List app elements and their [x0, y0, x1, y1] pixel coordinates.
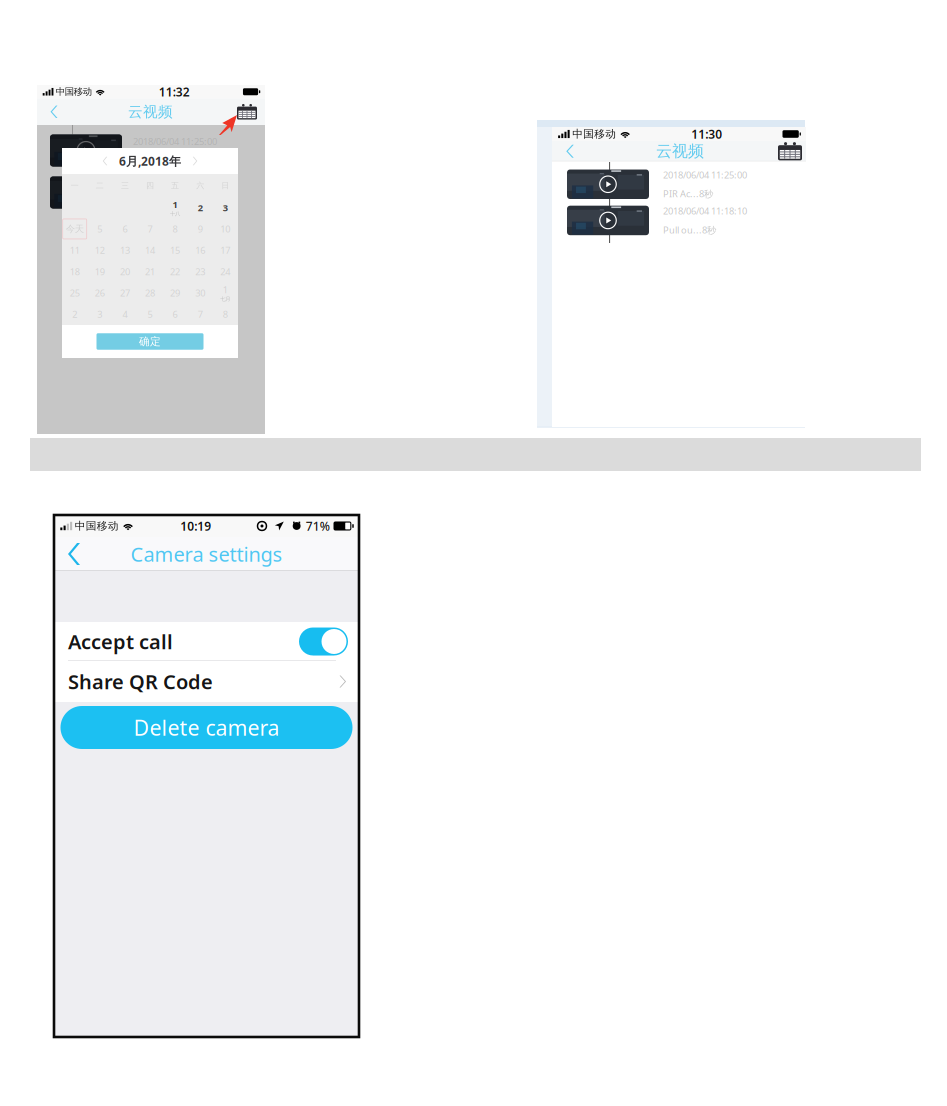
- staticText: 3: [223, 201, 228, 214]
- staticText: Delete camera: [133, 713, 279, 742]
- button[interactable]: 19: [87, 261, 112, 282]
- button[interactable]: Share QR Code: [54, 661, 359, 702]
- staticText: 19: [95, 265, 105, 278]
- staticText: 6月,2018年: [119, 153, 181, 169]
- staticText: 云视频: [128, 103, 173, 121]
- button[interactable]: 确定: [96, 333, 203, 350]
- staticText: 中国移动: [75, 519, 119, 532]
- staticText: Accept call: [68, 628, 173, 655]
- staticText: 6: [173, 308, 178, 320]
- button[interactable]: 13: [112, 240, 137, 261]
- button[interactable]: 16: [188, 240, 213, 261]
- staticText: 18: [70, 265, 80, 278]
- staticText: 2: [198, 201, 203, 214]
- staticText: 20: [120, 265, 130, 278]
- staticText: 21: [145, 265, 155, 278]
- button[interactable]: 22: [163, 261, 188, 282]
- button[interactable]: Pick date: [234, 99, 260, 125]
- staticText: 2018/06/04 11:25:00: [133, 135, 217, 147]
- button[interactable]: 2: [188, 197, 213, 218]
- button[interactable]: 15: [163, 240, 188, 261]
- staticText: 7: [147, 223, 152, 235]
- staticText: 8: [173, 223, 178, 235]
- button[interactable]: Back: [556, 141, 584, 161]
- staticText: 二: [96, 181, 104, 190]
- button[interactable]: Next month: [187, 153, 203, 169]
- button[interactable]: 8: [163, 218, 188, 240]
- button[interactable]: Accept call: [299, 627, 348, 655]
- button[interactable]: Previous month: [97, 153, 113, 169]
- button[interactable]: 3: [213, 197, 238, 218]
- button[interactable]: 27: [112, 282, 137, 303]
- button[interactable]: 1: [163, 197, 188, 218]
- staticText: 16: [195, 244, 205, 256]
- button[interactable]: Delete camera: [60, 706, 352, 749]
- staticText: Share QR Code: [68, 668, 213, 695]
- staticText: 11:32: [159, 84, 190, 100]
- staticText: 30: [195, 287, 205, 299]
- button[interactable]: 26: [87, 282, 112, 303]
- staticText: 1: [173, 198, 178, 211]
- button[interactable]: 10: [213, 218, 238, 240]
- button[interactable]: 1: [213, 282, 238, 303]
- button[interactable]: 14: [137, 240, 163, 261]
- button[interactable]: 今天: [62, 218, 87, 240]
- button[interactable]: Back: [54, 537, 94, 571]
- staticText: 11: [70, 244, 80, 256]
- button[interactable]: 11: [62, 240, 87, 261]
- button[interactable]: 4: [112, 303, 137, 325]
- staticText: Pull ou...8秒: [663, 224, 716, 236]
- button[interactable]: 28: [137, 282, 163, 303]
- staticText: 28: [145, 287, 155, 299]
- button[interactable]: 21: [137, 261, 163, 282]
- staticText: 四: [146, 181, 154, 190]
- staticText: 2: [72, 308, 77, 320]
- staticText: 11:30: [691, 126, 722, 142]
- staticText: 8: [223, 308, 228, 320]
- staticText: 7: [198, 308, 203, 320]
- staticText: 9: [198, 223, 203, 235]
- button[interactable]: 18: [62, 261, 87, 282]
- staticText: 中国移动: [572, 127, 616, 140]
- staticText: 五: [171, 181, 179, 190]
- button[interactable]: 8: [213, 303, 238, 325]
- staticText: 3: [97, 308, 102, 320]
- staticText: 一: [71, 181, 79, 190]
- button[interactable]: Pick date: [776, 141, 804, 161]
- staticText: 22: [170, 265, 180, 278]
- button[interactable]: 23: [188, 261, 213, 282]
- staticText: PIR Ac...8秒: [133, 153, 183, 166]
- button[interactable]: 25: [62, 282, 87, 303]
- staticText: 25: [70, 287, 80, 299]
- staticText: 六: [196, 181, 204, 190]
- button[interactable]: 30: [188, 282, 213, 303]
- staticText: 三: [121, 181, 129, 190]
- staticText: 27: [120, 287, 130, 299]
- staticText: 十八: [170, 211, 180, 217]
- staticText: 2018/06/04 11:25:00: [663, 169, 747, 181]
- button[interactable]: 24: [213, 261, 238, 282]
- staticText: 中国移动: [56, 86, 92, 97]
- button[interactable]: 17: [213, 240, 238, 261]
- button[interactable]: 29: [163, 282, 188, 303]
- button[interactable]: 12: [87, 240, 112, 261]
- staticText: 12: [95, 244, 105, 256]
- staticText: 10: [220, 223, 230, 235]
- button[interactable]: Back: [41, 99, 67, 125]
- staticText: Camera settings: [130, 541, 282, 567]
- button[interactable]: 20: [112, 261, 137, 282]
- staticText: 今天: [66, 223, 84, 235]
